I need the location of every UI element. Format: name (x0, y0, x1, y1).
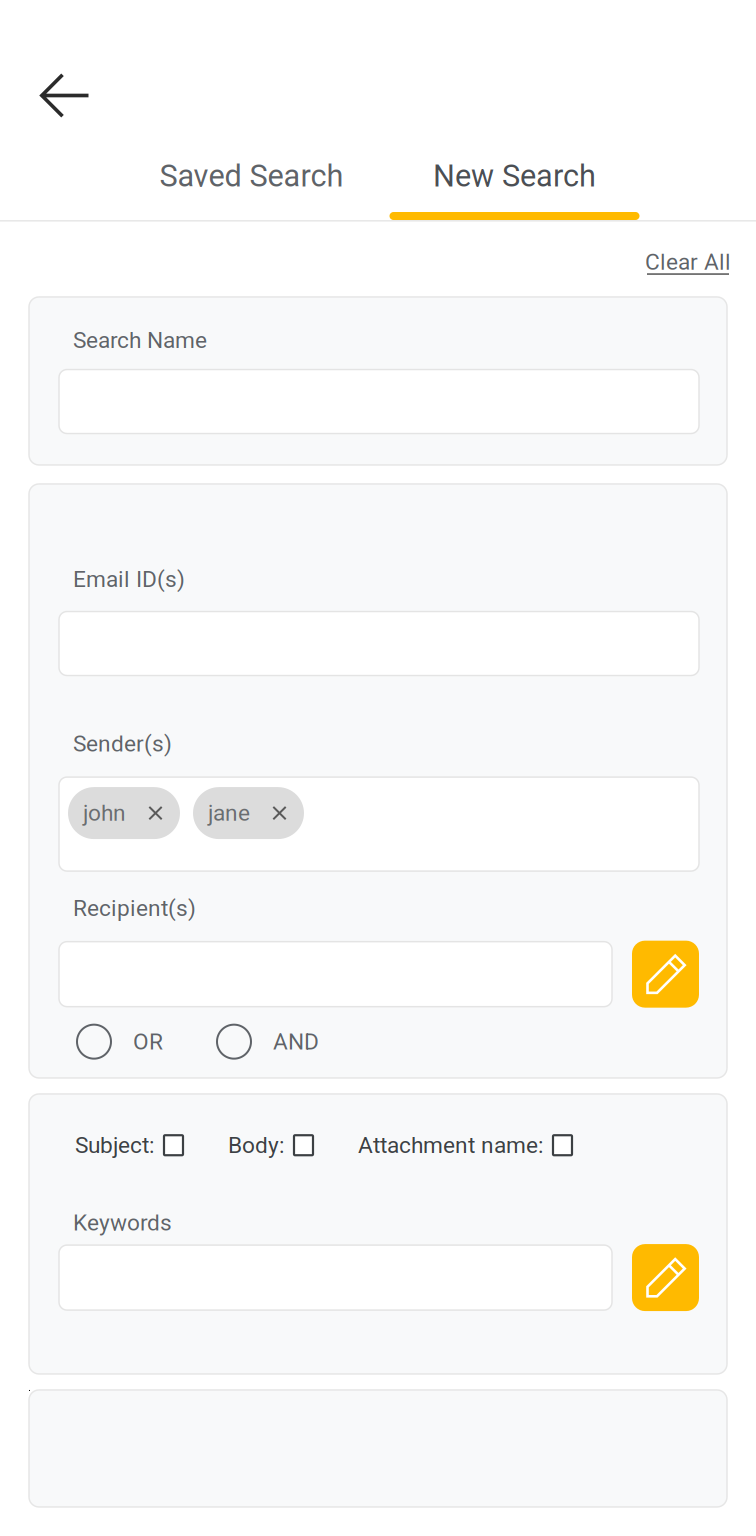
staticText: Email ID(s) (73, 566, 185, 593)
staticText: Body: (228, 1132, 284, 1159)
staticText: john (83, 800, 126, 826)
button[interactable]: Saved Search (120, 158, 383, 220)
button[interactable]: New Search (383, 158, 646, 220)
button[interactable]: Subject: (75, 1132, 183, 1159)
staticText: Search Name (73, 327, 207, 354)
button[interactable]: Back (0, 59, 114, 132)
staticText: Sender(s) (73, 730, 172, 757)
button[interactable]: Body: (228, 1132, 313, 1159)
button[interactable]: john (68, 787, 180, 839)
staticText: Clear All (645, 249, 731, 275)
button[interactable]: Clear All (645, 249, 731, 275)
button[interactable]: AND (217, 1025, 319, 1059)
staticText: Saved Search (159, 158, 343, 194)
button[interactable]: Edit (632, 941, 699, 1008)
staticText: OR (133, 1028, 163, 1055)
button[interactable]: Attachment name: (358, 1132, 572, 1159)
staticText: New Search (433, 158, 596, 194)
staticText: Recipient(s) (73, 895, 196, 922)
button[interactable]: Edit (632, 1244, 699, 1311)
button[interactable]: OR (77, 1025, 163, 1059)
button[interactable]: jane (193, 787, 304, 839)
staticText: jane (208, 800, 250, 826)
staticText: AND (273, 1028, 319, 1055)
staticText: Keywords (73, 1209, 172, 1236)
staticText: Attachment name: (358, 1132, 543, 1159)
staticText: Subject: (75, 1132, 154, 1159)
